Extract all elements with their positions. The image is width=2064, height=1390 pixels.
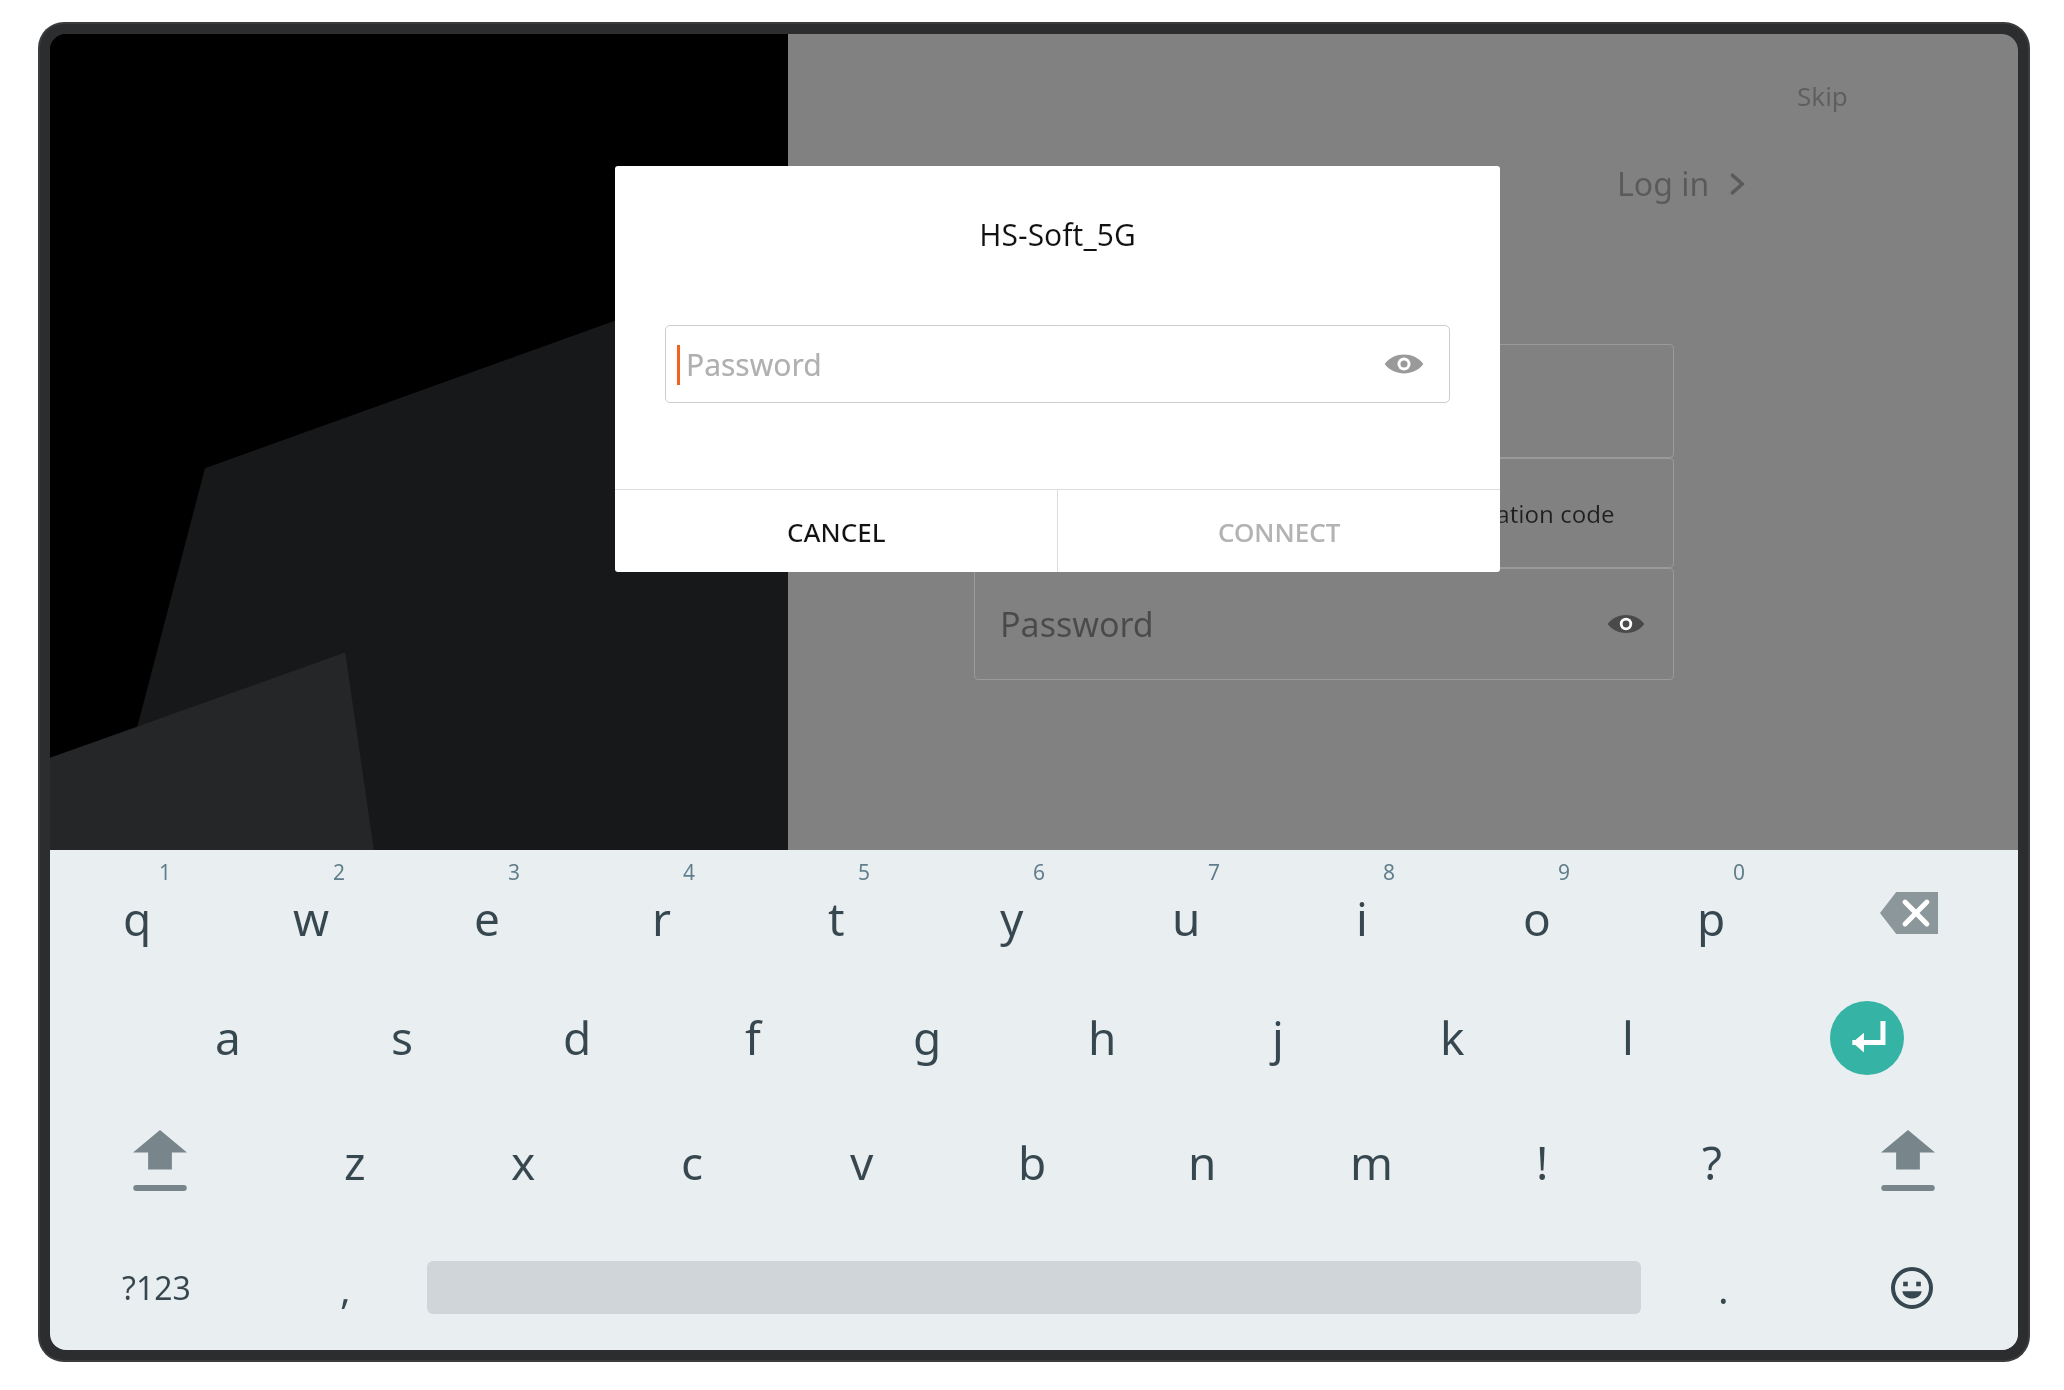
staticText: CONNECT	[1218, 514, 1341, 549]
button[interactable]: 0	[1624, 850, 1799, 975]
button[interactable]: c	[608, 1100, 777, 1225]
staticText: 1	[159, 858, 172, 887]
staticText: s	[391, 1006, 414, 1069]
staticText: Skip	[1797, 78, 1848, 113]
button[interactable]: f	[665, 975, 840, 1100]
button[interactable]: 8	[1274, 850, 1449, 975]
button[interactable]: 1	[50, 850, 224, 975]
staticText: g	[913, 1006, 942, 1069]
button[interactable]: 4	[574, 850, 749, 975]
staticText: b	[1018, 1131, 1047, 1194]
button[interactable]: d	[490, 975, 665, 1100]
staticText: !	[1536, 1131, 1549, 1194]
button[interactable]: 9	[1449, 850, 1624, 975]
staticText: x	[511, 1131, 536, 1194]
button[interactable]	[974, 344, 1674, 458]
staticText: t	[828, 887, 845, 950]
staticText: HS-Soft_5G	[615, 214, 1500, 255]
button[interactable]: Shift	[50, 1100, 270, 1225]
button[interactable]: h	[1015, 975, 1190, 1100]
button[interactable]: 2	[224, 850, 399, 975]
staticText: u	[1172, 887, 1201, 950]
staticText: ?	[1702, 1131, 1722, 1194]
button[interactable]: ,	[263, 1225, 427, 1350]
staticText: Password	[1000, 601, 1154, 647]
button[interactable]: j	[1190, 975, 1365, 1100]
staticText: 4	[683, 858, 696, 887]
button[interactable]: k	[1365, 975, 1540, 1100]
button[interactable]: g	[840, 975, 1015, 1100]
staticText: 2	[333, 858, 346, 887]
staticText: 0	[1733, 858, 1746, 887]
button[interactable]: 3	[399, 850, 574, 975]
staticText: m	[1350, 1131, 1394, 1194]
button[interactable]: ?123	[50, 1225, 263, 1350]
staticText: ,	[340, 1261, 351, 1315]
button[interactable]: !	[1457, 1100, 1627, 1225]
button[interactable]: ?	[1627, 1100, 1797, 1225]
staticText: ?123	[122, 1266, 191, 1310]
staticText: f	[745, 1006, 761, 1069]
staticText: Log in	[1617, 162, 1710, 206]
staticText: e	[474, 887, 500, 950]
staticText: .	[1718, 1261, 1729, 1315]
button[interactable]: Skip	[1787, 72, 1858, 119]
staticText: 3	[508, 858, 521, 887]
button[interactable]: x	[439, 1100, 608, 1225]
button[interactable]: CANCEL	[615, 490, 1057, 572]
staticText: Password	[686, 344, 822, 385]
button[interactable]: b	[947, 1100, 1117, 1225]
staticText: z	[344, 1131, 366, 1194]
staticText: d	[563, 1006, 592, 1069]
button[interactable]: CONNECT	[1058, 490, 1500, 572]
staticText: 6	[1033, 858, 1046, 887]
staticText: k	[1440, 1006, 1465, 1069]
button[interactable]: Password	[665, 325, 1450, 403]
staticText: i	[1356, 887, 1368, 950]
staticText: 9	[1558, 858, 1571, 887]
staticText: Access the verification code	[1304, 497, 1615, 530]
staticText: c	[681, 1131, 704, 1194]
staticText: 8	[1383, 858, 1396, 887]
button[interactable]: m	[1287, 1100, 1457, 1225]
button[interactable]: n	[1117, 1100, 1287, 1225]
button[interactable]: Enter	[1715, 975, 2018, 1100]
staticText: j	[1272, 1006, 1284, 1069]
button[interactable]: Backspace	[1799, 850, 2018, 975]
staticText: h	[1088, 1006, 1117, 1069]
button[interactable]: Log in	[1607, 156, 1760, 212]
staticText: n	[1188, 1131, 1217, 1194]
staticText: y	[1000, 887, 1024, 950]
staticText: w	[293, 887, 330, 950]
button[interactable]: 6	[924, 850, 1099, 975]
button[interactable]: s	[315, 975, 490, 1100]
staticText: q	[123, 887, 152, 950]
button[interactable]: Show password	[1380, 340, 1428, 388]
button[interactable]: Show password	[1604, 602, 1648, 646]
staticText: o	[1523, 887, 1551, 950]
button[interactable]: a	[140, 975, 315, 1100]
button[interactable]: .	[1641, 1225, 1805, 1350]
staticText: l	[1622, 1006, 1634, 1069]
button[interactable]: Password	[974, 568, 1674, 680]
staticText: p	[1697, 887, 1726, 950]
staticText: v	[850, 1131, 874, 1194]
staticText: 5	[858, 858, 871, 887]
staticText: 7	[1208, 858, 1221, 887]
staticText: CANCEL	[787, 514, 886, 549]
button[interactable]: 5	[749, 850, 924, 975]
button[interactable]: Access the verification code	[974, 458, 1674, 568]
button[interactable]: Emoji	[1805, 1225, 2018, 1350]
button[interactable]: Shift	[1797, 1100, 2018, 1225]
staticText: r	[652, 887, 671, 950]
staticText: a	[215, 1006, 241, 1069]
button[interactable]: l	[1540, 975, 1715, 1100]
button[interactable]: v	[777, 1100, 947, 1225]
button[interactable]: 7	[1099, 850, 1274, 975]
button[interactable]: z	[270, 1100, 439, 1225]
